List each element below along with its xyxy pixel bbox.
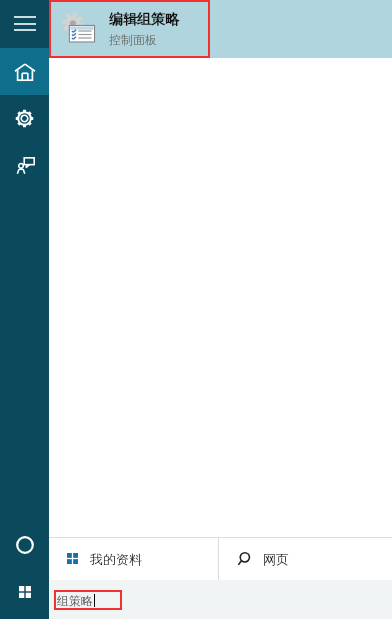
button[interactable]: Menu xyxy=(0,0,49,48)
button[interactable]: 网页 xyxy=(219,537,392,580)
button[interactable]: 我的资料 xyxy=(49,537,218,580)
button[interactable]: Settings xyxy=(0,95,49,142)
staticText: 组策略 xyxy=(57,593,93,608)
button[interactable]: Start xyxy=(0,567,49,617)
staticText: 控制面板 xyxy=(109,32,157,47)
button[interactable]: 编辑组策略 xyxy=(49,0,392,58)
button[interactable]: Feedback xyxy=(0,142,49,189)
staticText: 编辑组策略 xyxy=(109,11,179,29)
button[interactable]: 组策略 xyxy=(49,580,392,619)
staticText: 我的资料 xyxy=(90,551,142,567)
button[interactable]: Home xyxy=(0,48,49,95)
button[interactable]: Cortana xyxy=(0,522,49,567)
staticText: 网页 xyxy=(263,551,289,567)
